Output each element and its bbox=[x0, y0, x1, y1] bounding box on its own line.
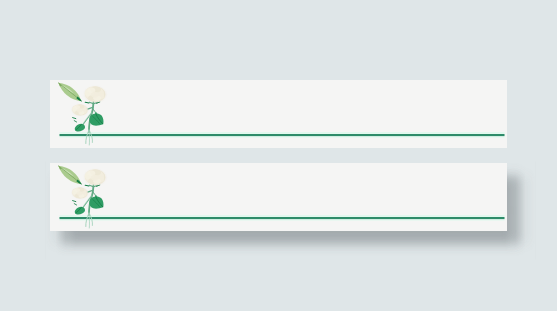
button[interactable]: Floral stationery card bbox=[50, 163, 507, 231]
button[interactable]: Floral stationery card bbox=[50, 80, 507, 148]
